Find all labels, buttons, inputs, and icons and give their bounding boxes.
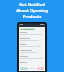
button[interactable] xyxy=(20,44,44,50)
staticText: About Opening xyxy=(0,8,64,14)
staticText: Get Notified xyxy=(0,2,64,8)
button[interactable] xyxy=(20,50,44,56)
button[interactable]: Tertiary action xyxy=(37,67,44,70)
button[interactable]: Phone preview xyxy=(17,22,47,72)
button[interactable] xyxy=(20,62,44,66)
staticText: Products xyxy=(0,14,64,20)
button[interactable] xyxy=(20,56,44,62)
button[interactable]: Primary action xyxy=(20,67,28,70)
button[interactable] xyxy=(20,28,35,30)
button[interactable] xyxy=(20,38,44,44)
button[interactable] xyxy=(20,32,44,38)
